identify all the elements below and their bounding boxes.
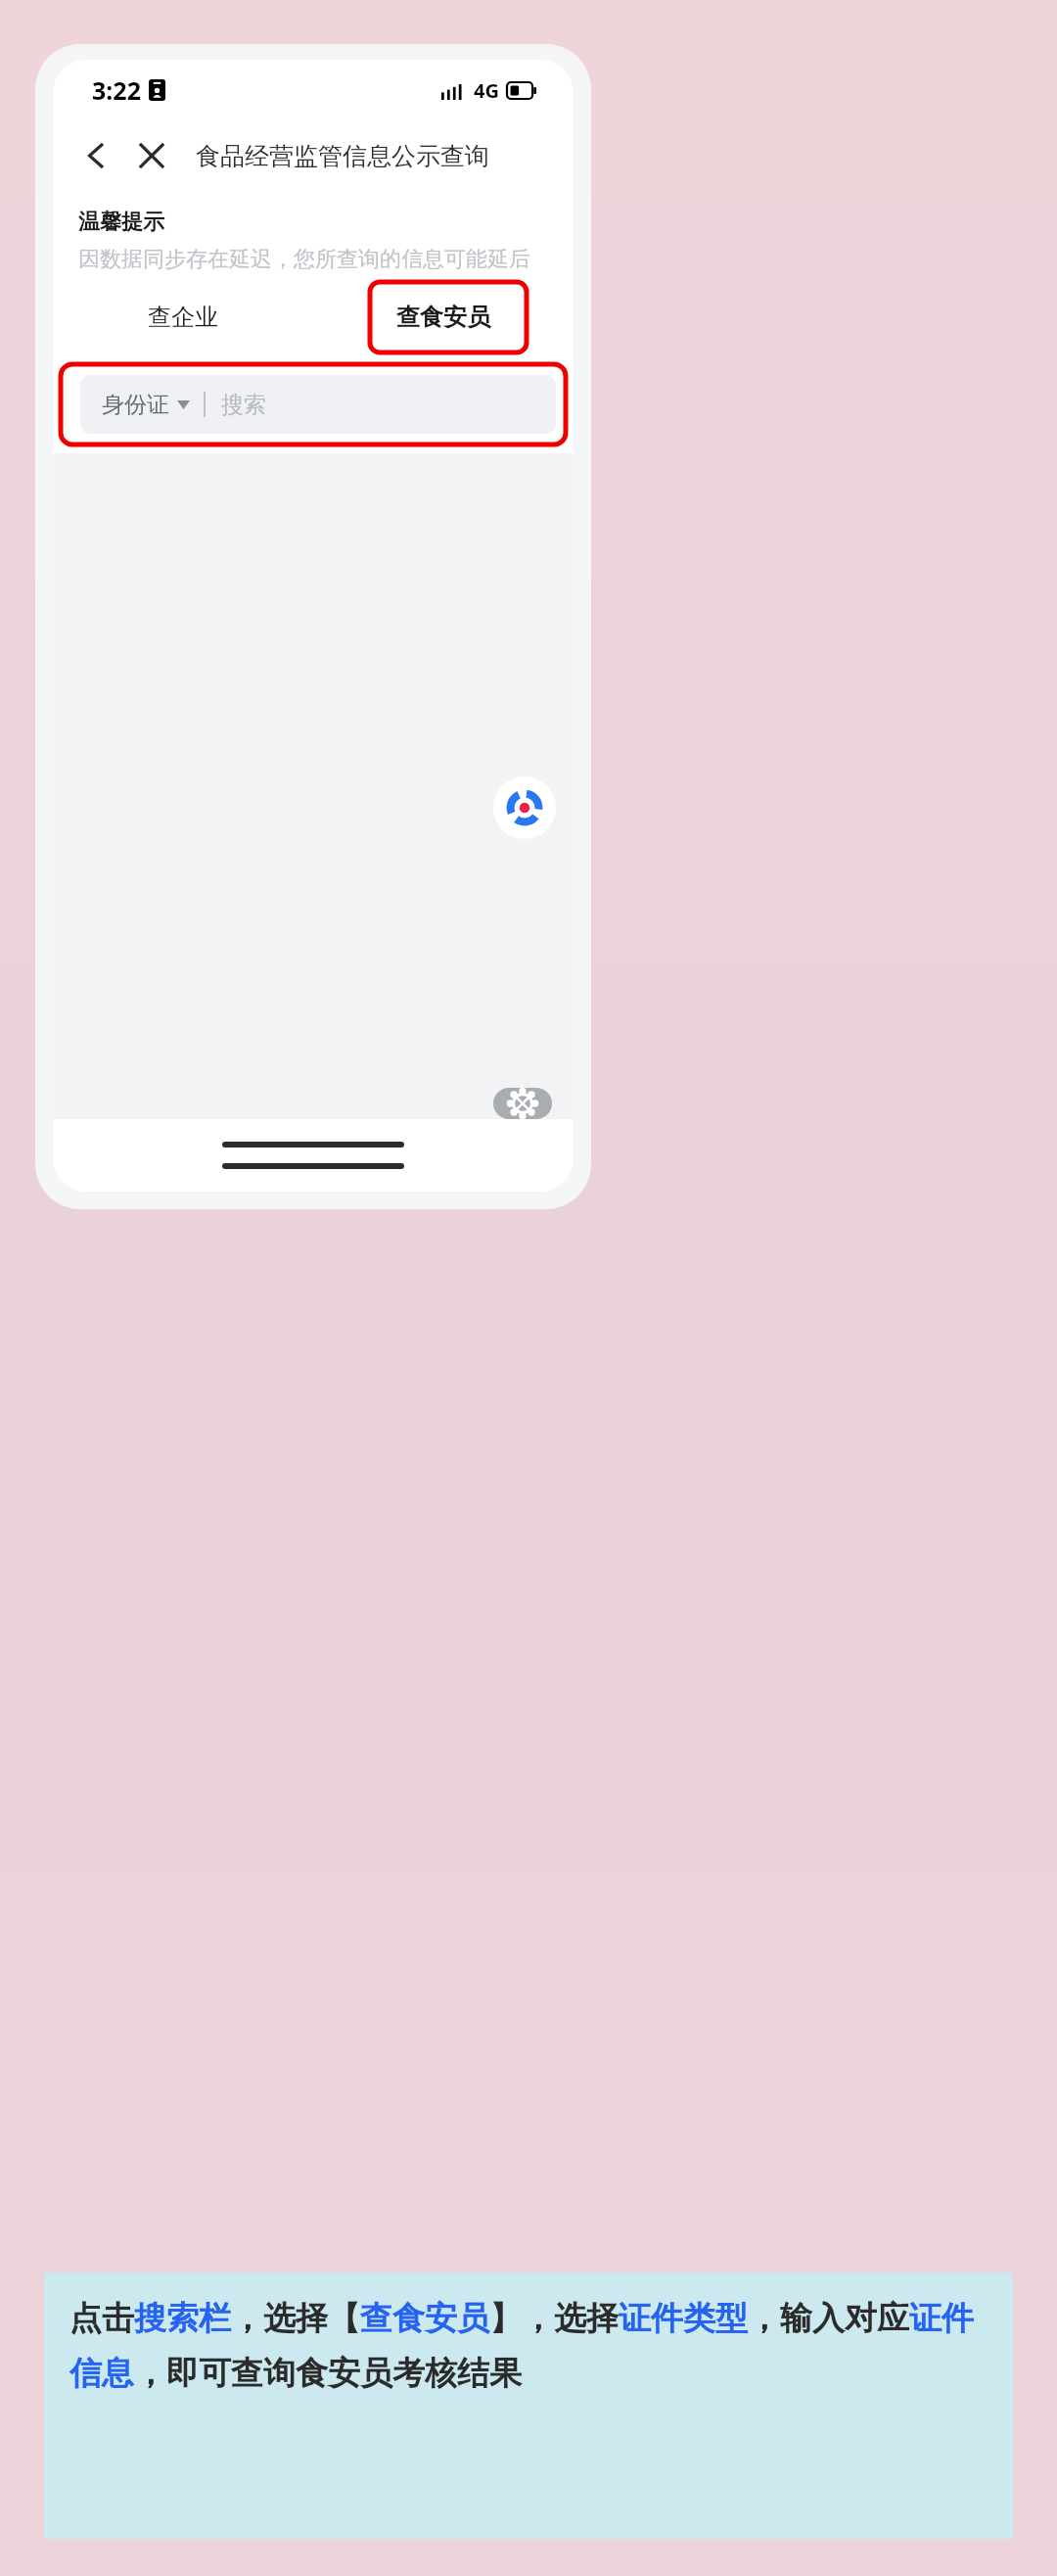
staticText: 4G — [474, 77, 499, 104]
button[interactable]: Back — [74, 133, 119, 178]
staticText: 点击搜索栏，选择【查食安员】，选择证件类型，输入对应证件信息，即可查询食安员考核… — [69, 2298, 993, 2394]
button[interactable]: 身份证 — [80, 375, 556, 434]
staticText: 身份证 — [102, 391, 169, 419]
button[interactable]: Service logo — [493, 776, 556, 839]
button[interactable]: Close — [129, 133, 174, 178]
staticText: 3:22 — [92, 73, 141, 107]
staticText: 查企业 — [148, 303, 218, 332]
staticText: 因数据同步存在延迟，您所查询的信息可能延后 — [78, 246, 530, 273]
staticText: 食品经营监管信息公示查询 — [196, 141, 489, 171]
staticText: 温馨提示 — [78, 209, 164, 236]
button[interactable]: 查企业 — [53, 279, 313, 355]
button[interactable]: Settings — [493, 1088, 552, 1119]
staticText: 搜索 — [221, 391, 266, 419]
staticText: 查食安员 — [396, 303, 490, 332]
button[interactable]: 查食安员 — [313, 279, 574, 355]
